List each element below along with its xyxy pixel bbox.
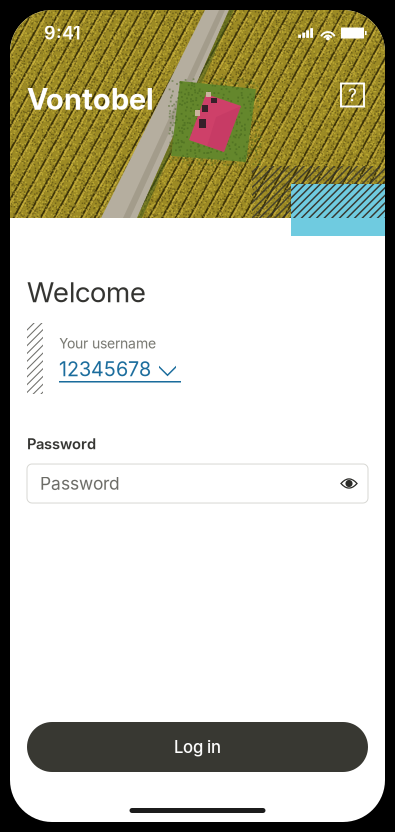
- staticText: ?: [348, 84, 357, 105]
- staticText: Password: [40, 473, 120, 494]
- staticText: Welcome: [27, 275, 146, 309]
- staticText: Your username: [59, 335, 156, 352]
- staticText: Log in: [174, 737, 221, 757]
- button[interactable]: Show password: [334, 468, 364, 498]
- staticText: 9:41: [44, 22, 81, 44]
- button[interactable]: 12345678: [59, 358, 181, 382]
- staticText: Vontobel: [27, 81, 154, 117]
- staticText: Password: [27, 435, 96, 453]
- staticText: 12345678: [59, 357, 151, 381]
- button[interactable]: Help: [341, 83, 368, 114]
- button[interactable]: Log in: [27, 722, 368, 772]
